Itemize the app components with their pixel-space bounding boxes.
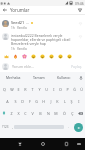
button[interactable]: instanbul2222 Benzelerek veryle hapareld… xyxy=(0,30,85,51)
staticText: Y xyxy=(38,87,41,92)
button[interactable]: J xyxy=(47,95,54,107)
staticText: Merhaba xyxy=(6,75,21,80)
button[interactable]: E xyxy=(15,83,22,95)
button[interactable]: A xyxy=(3,95,11,107)
button[interactable]: K xyxy=(54,95,61,107)
staticText: instanbul2222 Benzelerek veryle hapareld… xyxy=(11,33,78,46)
button[interactable]: Paylaş xyxy=(70,64,83,69)
staticText: H xyxy=(42,99,45,104)
button[interactable]: Z xyxy=(8,107,15,119)
staticText: E xyxy=(17,87,20,92)
staticText: Q xyxy=(3,87,6,92)
button[interactable]: H xyxy=(40,95,47,107)
button[interactable]: Emoji xyxy=(11,52,20,60)
staticText: C xyxy=(24,111,27,116)
button[interactable]: Tamam xyxy=(26,72,51,83)
button[interactable]: Seed21 xyxy=(0,15,85,30)
button[interactable]: Recents xyxy=(61,138,71,150)
button[interactable]: M xyxy=(52,107,60,119)
staticText: Ş xyxy=(70,99,73,104)
button[interactable]: X xyxy=(15,107,22,119)
button[interactable]: T xyxy=(29,83,36,95)
button[interactable]: C xyxy=(22,107,29,119)
staticText: L xyxy=(64,99,66,104)
button[interactable]: F xyxy=(26,95,33,107)
button[interactable]: Hide keyboard xyxy=(15,138,25,150)
staticText: I xyxy=(78,99,80,104)
staticText: , xyxy=(12,125,13,129)
staticText: X xyxy=(17,111,20,116)
button[interactable]: B xyxy=(36,107,44,119)
staticText: J xyxy=(50,99,52,104)
button[interactable]: Ü xyxy=(78,83,85,95)
button[interactable]: Switch keyboard xyxy=(74,138,83,150)
staticText: T xyxy=(31,87,34,92)
button[interactable]: I xyxy=(50,83,57,95)
button[interactable]: Merhaba xyxy=(0,72,26,83)
staticText: P xyxy=(66,87,69,92)
staticText: A xyxy=(6,99,9,104)
button[interactable]: O xyxy=(57,83,64,95)
staticText: F xyxy=(29,99,31,104)
button[interactable]: Emoji xyxy=(29,52,38,60)
staticText: Z xyxy=(10,111,13,116)
button[interactable]: Kullanıcı xyxy=(51,72,76,83)
button[interactable]: P xyxy=(64,83,71,95)
button[interactable]: S xyxy=(11,95,19,107)
button[interactable]: U xyxy=(43,83,50,95)
button[interactable]: Emoji xyxy=(38,52,47,60)
staticText: U xyxy=(45,87,48,92)
button[interactable]: Ş xyxy=(68,95,75,107)
button[interactable]: Emoji xyxy=(47,52,56,60)
button[interactable]: Emoji xyxy=(2,52,11,60)
staticText: 1h xyxy=(11,47,15,51)
staticText: D xyxy=(21,99,24,104)
button[interactable]: Back xyxy=(0,6,10,14)
button[interactable]: Ö xyxy=(60,107,68,119)
button[interactable]: G xyxy=(33,95,40,107)
staticText: S xyxy=(14,99,17,104)
staticText: . xyxy=(68,125,69,129)
button[interactable]: Send xyxy=(74,123,83,132)
button[interactable]: Like xyxy=(78,21,83,26)
button[interactable]: Ç xyxy=(68,107,76,119)
staticText: Ö xyxy=(63,111,66,116)
button[interactable]: ?123 xyxy=(0,121,10,133)
staticText: Ç xyxy=(71,111,74,116)
button[interactable]: I xyxy=(75,95,82,107)
staticText: ... xyxy=(26,20,30,25)
staticText: Yorumlar xyxy=(10,7,30,13)
staticText: N xyxy=(47,111,50,116)
button[interactable]: Emoji xyxy=(20,52,29,60)
button[interactable]: Share xyxy=(75,6,85,14)
button[interactable]: R xyxy=(22,83,29,95)
staticText: Yorum ekle... xyxy=(12,64,34,69)
staticText: K xyxy=(56,99,59,104)
staticText: R xyxy=(24,87,27,92)
button[interactable]: Home xyxy=(38,138,48,150)
staticText: Paylaş xyxy=(71,64,82,69)
button[interactable]: Emoji xyxy=(65,52,74,60)
staticText: G xyxy=(35,99,38,104)
staticText: M xyxy=(54,111,58,116)
staticText: O xyxy=(59,87,62,92)
staticText: 1h xyxy=(11,26,15,30)
button[interactable]: Backspace xyxy=(76,107,85,119)
button[interactable]: W xyxy=(8,83,15,95)
button[interactable]: Voice input xyxy=(76,72,85,83)
button[interactable]: Shift xyxy=(0,107,8,119)
button[interactable]: , xyxy=(10,121,14,133)
button[interactable]: Emoji xyxy=(56,52,65,60)
staticText: Ü xyxy=(80,87,83,92)
button[interactable]: L xyxy=(61,95,68,107)
button[interactable]: Y xyxy=(36,83,43,95)
button[interactable]: N xyxy=(44,107,52,119)
button[interactable]: Like xyxy=(78,34,83,39)
button[interactable]: Q xyxy=(0,83,8,95)
button[interactable]: V xyxy=(29,107,36,119)
button[interactable]: D xyxy=(19,95,26,107)
button[interactable]: Ğ xyxy=(71,83,78,95)
staticText: Tamam xyxy=(33,75,45,80)
